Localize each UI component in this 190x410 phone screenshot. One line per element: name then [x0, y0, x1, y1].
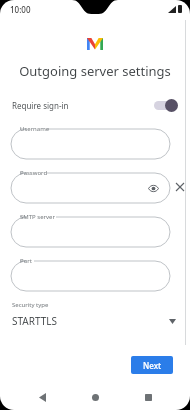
staticText: Password [20, 169, 48, 177]
staticText: STARTTLS [12, 314, 58, 328]
button[interactable]: Show password [147, 182, 160, 195]
staticText: Username [20, 125, 50, 133]
button[interactable]: Show password [11, 173, 170, 203]
button[interactable]: Home [84, 386, 106, 408]
button[interactable] [11, 217, 170, 247]
staticText: Outgoing server settings [19, 62, 171, 80]
staticText: SMTP server [20, 213, 55, 221]
button[interactable]: Security type [0, 301, 190, 328]
staticText: Port [20, 257, 32, 265]
button[interactable]: Recent apps [137, 386, 159, 408]
staticText: 10:00 [10, 4, 31, 15]
button[interactable]: Require sign-in [0, 93, 190, 117]
staticText: Next [143, 360, 162, 371]
button[interactable] [11, 261, 170, 291]
button[interactable]: Require sign-in toggle [154, 99, 178, 112]
button[interactable]: Clear [174, 181, 186, 193]
staticText: Security type [12, 301, 49, 309]
button[interactable] [11, 129, 170, 159]
button[interactable]: Back [31, 386, 53, 408]
staticText: Require sign-in [12, 100, 69, 111]
button[interactable]: Next [131, 356, 173, 374]
